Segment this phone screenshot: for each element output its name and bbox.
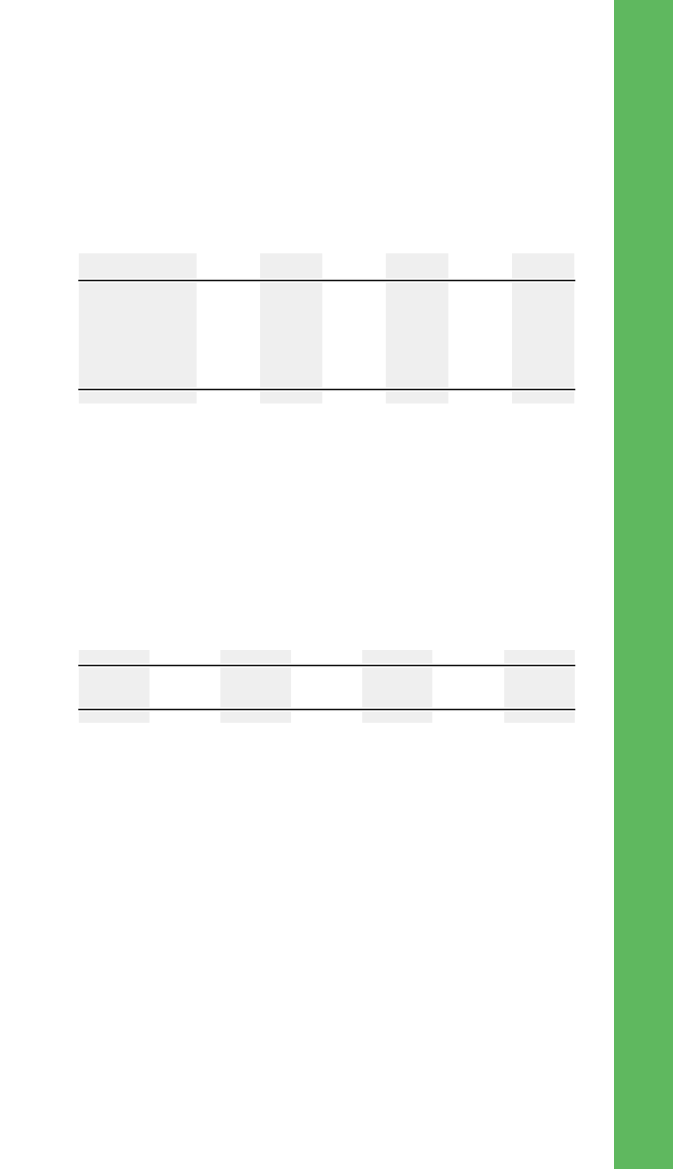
button[interactable]: Summary table, row 3 xyxy=(78,390,575,404)
button[interactable]: Summary table, row 1 xyxy=(78,253,575,280)
button[interactable]: Totals table, row 3 xyxy=(78,710,575,723)
button[interactable]: Summary table, row 2 xyxy=(78,281,575,390)
button[interactable]: Totals table, row 1 xyxy=(78,650,575,666)
button[interactable]: Totals table, row 2 xyxy=(78,666,575,710)
